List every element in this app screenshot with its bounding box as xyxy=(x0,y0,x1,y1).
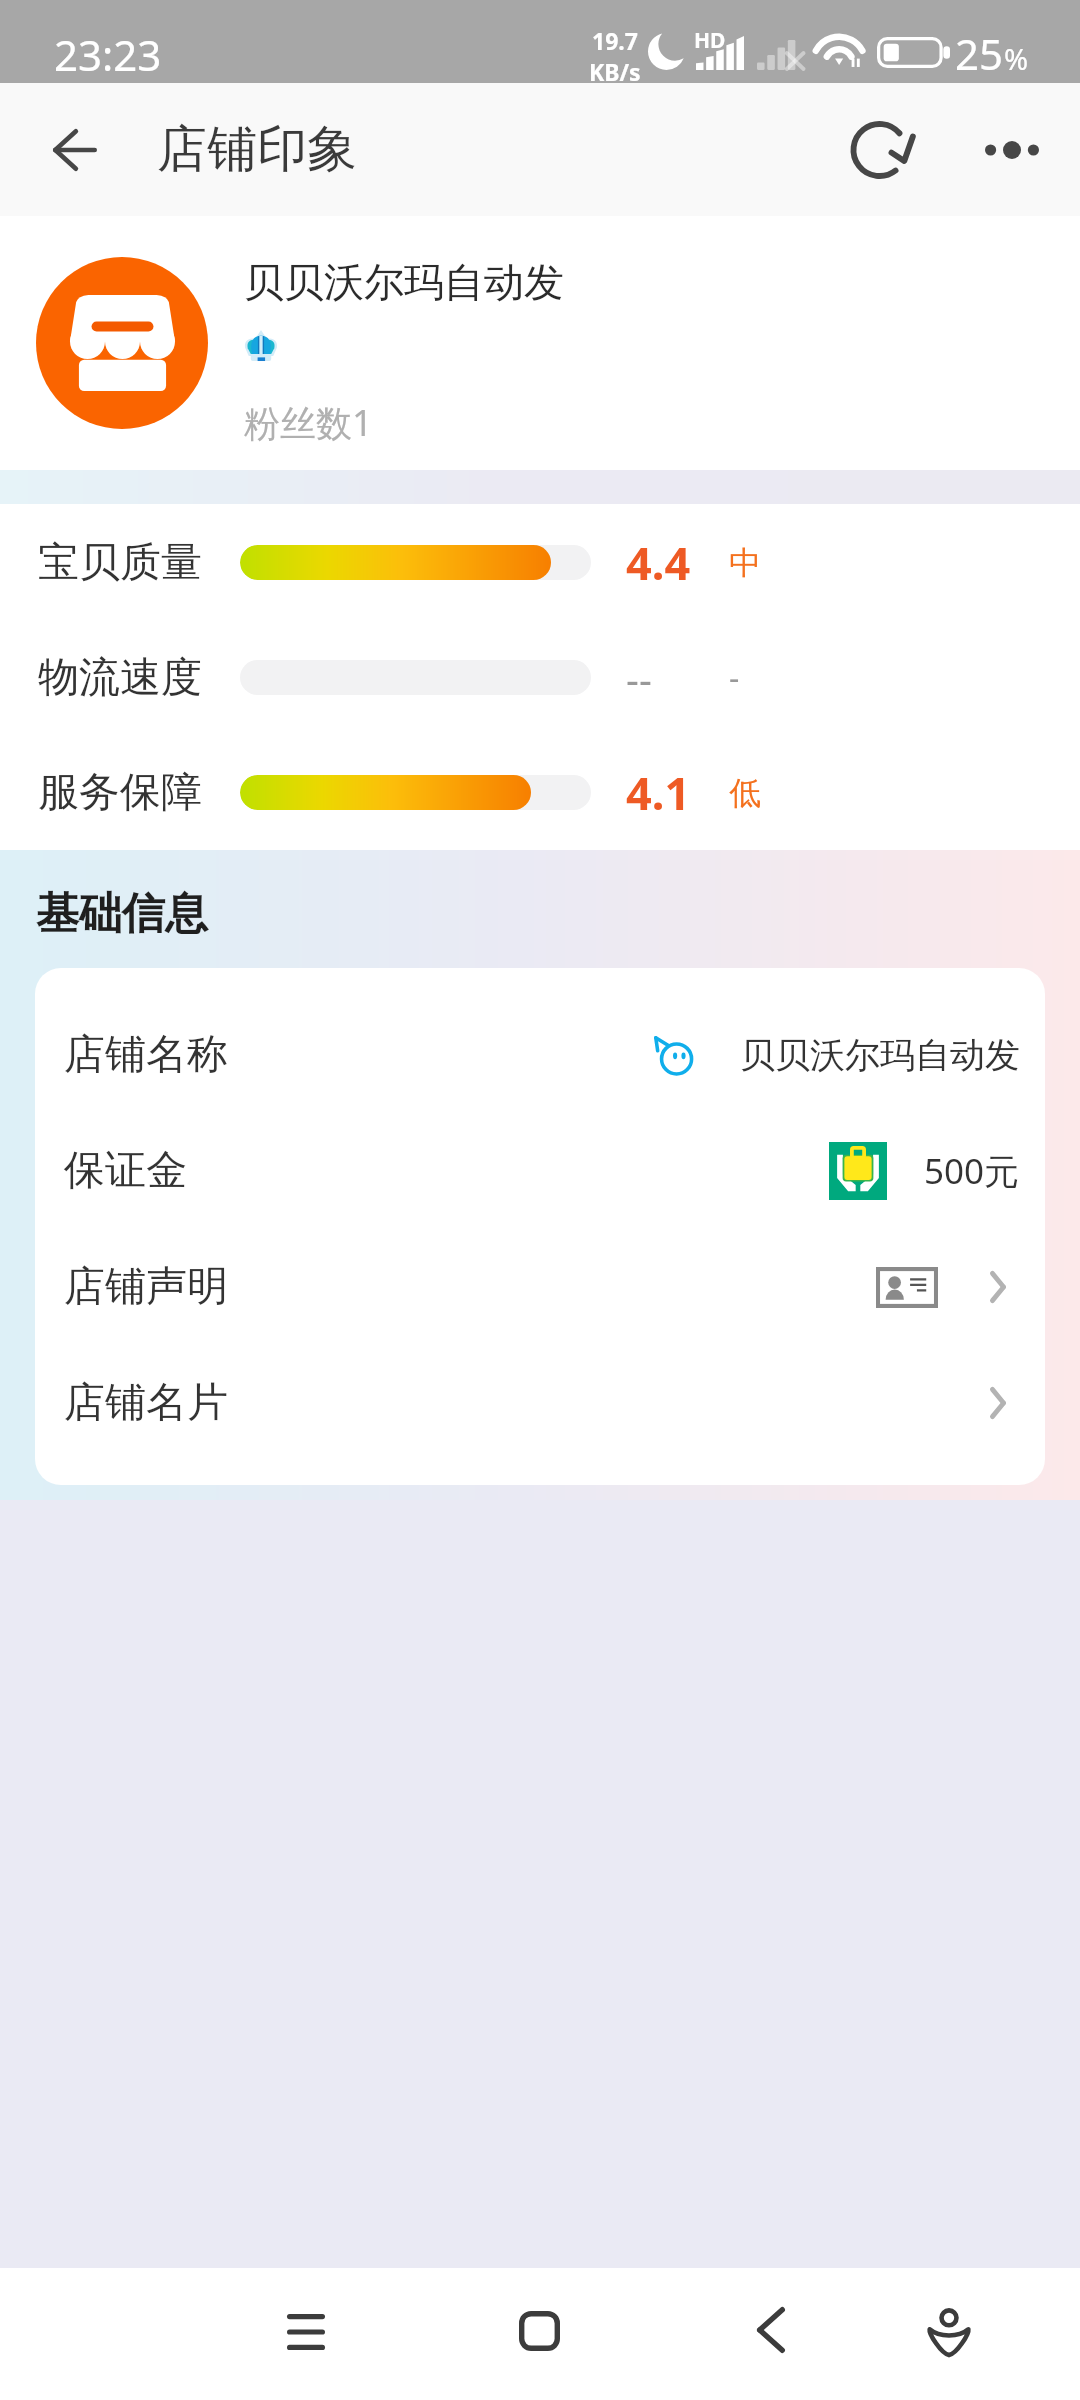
staticText: 23:23 xyxy=(54,26,162,83)
button[interactable]: 物流速度 xyxy=(0,620,1080,735)
staticText: KB/s xyxy=(589,56,641,87)
staticText: 店铺声明 xyxy=(64,1261,228,1313)
staticText: -- xyxy=(626,651,652,705)
button[interactable]: 店铺名称 xyxy=(35,997,1045,1113)
staticText: % xyxy=(1004,39,1029,78)
staticText: 物流速度 xyxy=(38,652,204,704)
button[interactable]: 服务保障 xyxy=(0,735,1080,850)
button[interactable]: Refresh xyxy=(832,100,932,200)
staticText: 店铺名片 xyxy=(64,1377,228,1429)
staticText: - xyxy=(729,656,740,700)
staticText: 基础信息 xyxy=(36,887,208,941)
staticText: 4.1 xyxy=(626,762,691,823)
staticText: 500元 xyxy=(924,1147,1020,1195)
staticText: 店铺名称 xyxy=(64,1029,228,1081)
button[interactable]: Recent apps xyxy=(251,2282,361,2382)
staticText: 宝贝质量 xyxy=(38,537,204,589)
button[interactable]: 宝贝质量 xyxy=(0,505,1080,620)
staticText: 保证金 xyxy=(64,1145,187,1197)
staticText: HD xyxy=(694,26,726,55)
button[interactable]: Home xyxy=(484,2281,594,2381)
staticText: 贝贝沃尔玛自动发 xyxy=(244,257,564,307)
staticText: 25 xyxy=(955,25,1004,82)
button[interactable]: 保证金 xyxy=(35,1113,1045,1229)
staticText: 低 xyxy=(729,773,761,813)
button[interactable]: Assistant xyxy=(894,2283,1004,2383)
staticText: 店铺印象 xyxy=(157,118,357,181)
button[interactable]: 贝贝沃尔玛自动发 xyxy=(0,216,1080,470)
button[interactable]: Back xyxy=(25,100,125,200)
staticText: 粉丝数1 xyxy=(244,398,373,447)
staticText: 中 xyxy=(729,543,761,583)
button[interactable]: 店铺声明 xyxy=(35,1229,1045,1345)
staticText: 19.7 xyxy=(592,25,638,56)
staticText: 贝贝沃尔玛自动发 xyxy=(740,1033,1020,1077)
staticText: 4.4 xyxy=(626,532,691,593)
button[interactable]: Back xyxy=(716,2280,826,2380)
button[interactable]: 店铺名片 xyxy=(35,1345,1045,1461)
button[interactable]: More options xyxy=(962,100,1062,200)
staticText: 服务保障 xyxy=(38,767,204,819)
